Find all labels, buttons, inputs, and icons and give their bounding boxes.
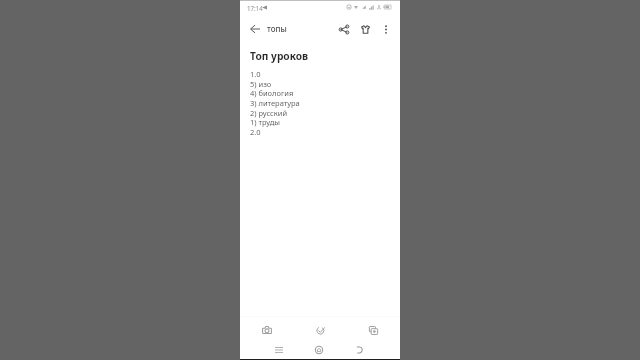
button[interactable]: Share: [336, 21, 352, 37]
staticText: 5) изо: [250, 79, 272, 89]
button[interactable]: More options: [378, 21, 394, 37]
staticText: 1) труды: [250, 117, 280, 127]
staticText: 2) русский: [250, 108, 288, 118]
staticText: 1.0: [250, 69, 261, 79]
staticText: топы: [267, 23, 287, 34]
staticText: 17:14: [247, 4, 263, 12]
staticText: 2.0: [250, 127, 261, 137]
staticText: 3) литература: [250, 98, 300, 108]
button[interactable]: Gallery: [365, 322, 381, 338]
button[interactable]: Shirt: [357, 21, 373, 37]
button[interactable]: Back: [247, 21, 263, 37]
staticText: Топ уроков: [250, 49, 309, 63]
button[interactable]: Camera: [259, 322, 275, 338]
button[interactable]: Select: [312, 322, 328, 338]
staticText: 4) биология: [250, 88, 294, 98]
button[interactable]: Home: [311, 342, 327, 358]
button[interactable]: Back: [351, 342, 367, 358]
button[interactable]: Recent apps: [271, 342, 287, 358]
